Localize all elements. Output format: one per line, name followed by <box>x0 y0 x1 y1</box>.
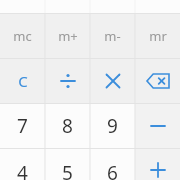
button[interactable]: 5 <box>45 148 90 180</box>
button[interactable]: Multiply <box>90 58 135 103</box>
button[interactable]: mc <box>0 13 45 58</box>
button[interactable]: m- <box>90 13 135 58</box>
staticText: m+ <box>58 27 78 45</box>
staticText: mc <box>13 27 32 45</box>
staticText: 5 <box>62 160 73 180</box>
staticText: m- <box>104 27 121 45</box>
button[interactable]: mr <box>135 13 180 58</box>
staticText: C <box>18 71 28 91</box>
staticText: 4 <box>17 160 28 180</box>
button[interactable]: 9 <box>90 103 135 148</box>
button[interactable]: Minus <box>135 103 180 148</box>
staticText: mr <box>149 27 167 45</box>
button[interactable]: 6 <box>90 148 135 180</box>
button[interactable]: 4 <box>0 148 45 180</box>
button[interactable]: 7 <box>0 103 45 148</box>
button[interactable]: C <box>0 58 45 103</box>
button[interactable]: Divide <box>45 58 90 103</box>
staticText: 8 <box>62 113 73 139</box>
button[interactable]: Plus <box>135 148 180 180</box>
button[interactable]: m+ <box>45 13 90 58</box>
button[interactable]: Backspace <box>135 58 180 103</box>
button[interactable]: 8 <box>45 103 90 148</box>
staticText: 6 <box>107 160 118 180</box>
staticText: 7 <box>17 113 28 139</box>
staticText: 9 <box>107 113 118 139</box>
